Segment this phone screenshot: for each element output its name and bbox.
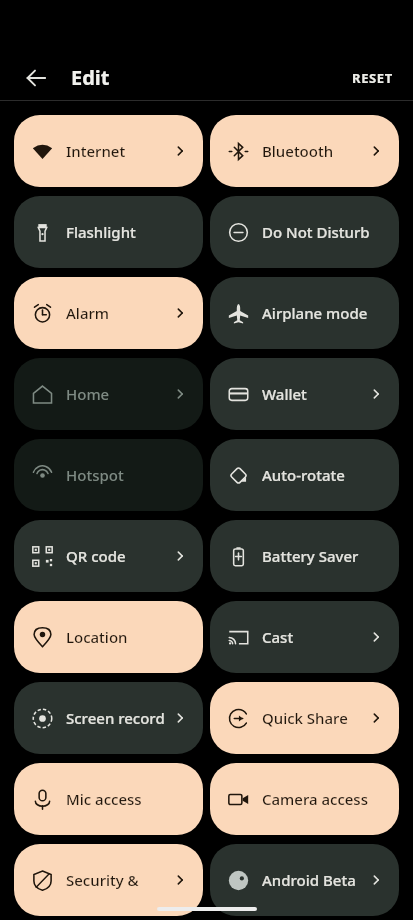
button[interactable]: Home	[14, 358, 203, 430]
button[interactable]: Auto-rotate	[210, 439, 399, 511]
button[interactable]: Wallet	[210, 358, 399, 430]
staticText: Do Not Disturb	[262, 222, 383, 242]
button[interactable]: Battery Saver	[210, 520, 399, 592]
button[interactable]: RESET	[346, 63, 399, 93]
staticText: Alarm	[66, 303, 169, 323]
button[interactable]: Camera access	[210, 763, 399, 835]
staticText: Edit	[71, 64, 110, 91]
staticText: Quick Share	[262, 708, 365, 728]
button[interactable]: QR code scanner	[14, 520, 203, 592]
button[interactable]: Flashlight	[14, 196, 203, 268]
button[interactable]: Bluetooth	[210, 115, 399, 187]
staticText: Screen record	[66, 708, 169, 728]
staticText: Hotspot	[66, 465, 187, 485]
button[interactable]: Screen record	[14, 682, 203, 754]
staticText: Camera access	[262, 789, 383, 809]
staticText: Home	[66, 384, 169, 404]
button[interactable]: Hotspot	[14, 439, 203, 511]
button[interactable]: Cast	[210, 601, 399, 673]
staticText: Battery Saver	[262, 546, 383, 566]
button[interactable]: Android Beta Pr..	[210, 844, 399, 916]
staticText: Security & priva..	[66, 870, 169, 890]
button[interactable]: Quick Share	[210, 682, 399, 754]
button[interactable]: Back	[18, 60, 54, 96]
staticText: Flashlight	[66, 222, 187, 242]
button[interactable]: Internet	[14, 115, 203, 187]
button[interactable]: Location	[14, 601, 203, 673]
staticText: QR code scanner	[66, 546, 169, 566]
staticText: Wallet	[262, 384, 365, 404]
staticText: Airplane mode	[262, 303, 383, 323]
button[interactable]: Do Not Disturb	[210, 196, 399, 268]
staticText: Bluetooth	[262, 141, 365, 161]
staticText: RESET	[352, 69, 393, 87]
button[interactable]: Security & priva..	[14, 844, 203, 916]
staticText: Mic access	[66, 789, 187, 809]
staticText: Location	[66, 627, 187, 647]
staticText: Internet	[66, 141, 169, 161]
staticText: Auto-rotate	[262, 465, 383, 485]
staticText: Android Beta Pr..	[262, 870, 365, 890]
button[interactable]: Alarm	[14, 277, 203, 349]
staticText: Cast	[262, 627, 365, 647]
button[interactable]: Mic access	[14, 763, 203, 835]
button[interactable]: Airplane mode	[210, 277, 399, 349]
